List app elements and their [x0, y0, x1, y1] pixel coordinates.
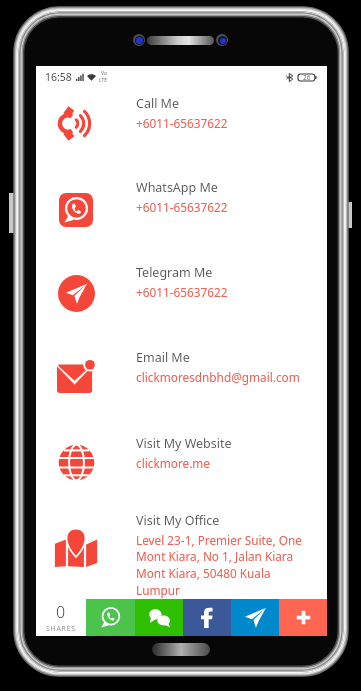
staticText: clickmore.me — [136, 455, 211, 471]
button[interactable]: Visit My Office — [36, 505, 327, 599]
staticText: clickmoresdnbhd@gmail.com — [136, 369, 300, 385]
button[interactable]: Visit My Website — [36, 428, 327, 505]
button[interactable]: WhatsApp Me — [36, 172, 327, 257]
staticText: SHARES — [46, 624, 76, 634]
button[interactable]: 0 — [36, 599, 86, 636]
staticText: 26 — [303, 73, 311, 82]
staticText: 0 — [56, 601, 66, 623]
staticText: WhatsApp Me — [136, 179, 218, 196]
staticText: +6011-65637622 — [136, 284, 228, 300]
button[interactable]: More options — [279, 599, 327, 636]
staticText: Call Me — [136, 95, 180, 112]
button[interactable]: Share on WhatsApp — [86, 599, 135, 636]
staticText: +6011-65637622 — [136, 115, 228, 131]
staticText: 16:58 — [45, 70, 72, 84]
button[interactable]: Share on Facebook — [183, 599, 231, 636]
button[interactable]: Share on Telegram — [231, 599, 279, 636]
staticText: Telegram Me — [136, 264, 213, 281]
button[interactable]: Telegram Me — [36, 257, 327, 342]
button[interactable]: Email Me — [36, 342, 327, 428]
staticText: Visit My Website — [136, 435, 232, 452]
staticText: LTE — [99, 77, 108, 84]
staticText: Level 23-1, Premier Suite, One Mont Kiar… — [136, 532, 313, 598]
staticText: Email Me — [136, 349, 190, 366]
staticText: Vo — [101, 70, 107, 77]
staticText: Visit My Office — [136, 512, 220, 529]
button[interactable]: Call Me — [36, 88, 327, 172]
staticText: +6011-65637622 — [136, 199, 228, 215]
button[interactable]: Share on WeChat — [135, 599, 183, 636]
